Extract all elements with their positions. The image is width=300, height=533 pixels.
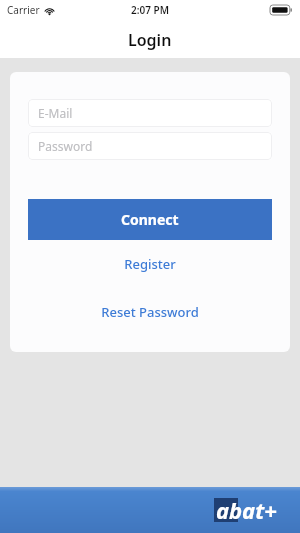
other: Wi-Fi <box>44 5 55 16</box>
staticText: Login <box>128 29 172 51</box>
staticText: Connect <box>121 210 179 229</box>
button[interactable]: abat+ logo <box>0 487 300 533</box>
button[interactable]: Password <box>28 132 272 160</box>
button[interactable]: Register <box>28 240 272 288</box>
staticText: Carrier <box>7 3 40 17</box>
other: Battery full <box>270 5 292 15</box>
staticText: E-Mail <box>38 105 73 121</box>
staticText: Register <box>124 255 176 273</box>
button[interactable]: Reset Password <box>28 288 272 335</box>
button[interactable]: Connect <box>28 199 272 240</box>
staticText: Password <box>38 138 93 154</box>
staticText: 2:07 PM <box>131 3 169 17</box>
button[interactable]: E-Mail <box>28 99 272 127</box>
staticText: abat+ <box>216 495 277 525</box>
staticText: Reset Password <box>101 303 199 321</box>
